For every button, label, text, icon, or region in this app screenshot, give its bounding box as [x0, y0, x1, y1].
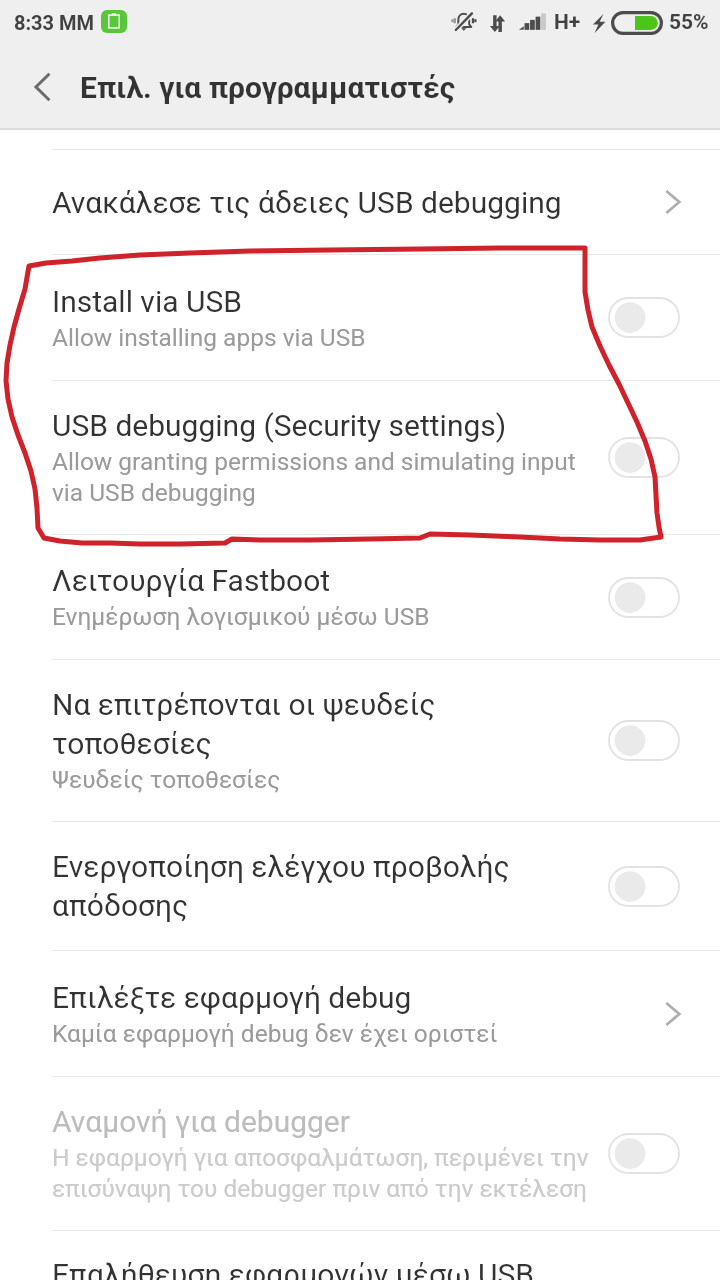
button[interactable]: Install via USB: [0, 255, 720, 380]
staticText: Install via USB: [52, 284, 242, 319]
button[interactable]: Toggle: [608, 437, 680, 478]
staticText: Ενημέρωση λογισμικού μέσω USB: [52, 602, 430, 631]
staticText: Αναμονή για debugger: [52, 1104, 350, 1139]
button[interactable]: Toggle: [608, 297, 680, 338]
button[interactable]: Επιλέξτε εφαρμογή debug: [0, 951, 720, 1076]
button[interactable]: Toggle: [608, 866, 680, 907]
button[interactable]: USB debugging (Security settings): [0, 381, 720, 534]
staticText: Επαλήθευση εφαρμογών μέσω USB: [52, 1257, 535, 1280]
button[interactable]: Ανακάλεσε τις άδειες USB debugging: [0, 150, 720, 254]
staticText: Να επιτρέπονται οι ψευδείς τοποθεσίες: [52, 687, 436, 761]
staticText: Καμία εφαρμογή debug δεν έχει οριστεί: [52, 1019, 498, 1048]
staticText: H+: [554, 10, 581, 35]
staticText: USB debugging (Security settings): [52, 408, 507, 443]
staticText: Η εφαρμογή για αποσφαλμάτωση, περιμένει …: [52, 1143, 589, 1203]
staticText: Ανακάλεσε τις άδειες USB debugging: [52, 185, 562, 220]
button[interactable]: Back: [20, 64, 66, 110]
button[interactable]: Αναμονή για debugger: [0, 1077, 720, 1230]
button[interactable]: Ενεργοποίηση ελέγχου προβολής απόδοσης: [0, 822, 720, 950]
button[interactable]: Να επιτρέπονται οι ψευδείς τοποθεσίες: [0, 660, 720, 821]
staticText: Λειτουργία Fastboot: [52, 563, 331, 598]
button[interactable]: Toggle: [608, 1133, 680, 1174]
staticText: 55%: [669, 10, 709, 35]
staticText: Επιλέξτε εφαρμογή debug: [52, 980, 412, 1015]
staticText: 8:33 ΜΜ: [14, 11, 95, 34]
staticText: Allow granting permissions and simulatin…: [52, 447, 576, 507]
button[interactable]: Λειτουργία Fastboot: [0, 535, 720, 659]
staticText: Ενεργοποίηση ελέγχου προβολής απόδοσης: [52, 849, 510, 923]
staticText: Ψευδείς τοποθεσίες: [52, 765, 281, 794]
button[interactable]: Επαλήθευση εφαρμογών μέσω USB: [0, 1231, 720, 1280]
button[interactable]: Toggle: [608, 720, 680, 761]
staticText: Allow installing apps via USB: [52, 323, 366, 352]
staticText: Επιλ. για προγραμματιστές: [80, 70, 456, 105]
button[interactable]: Toggle: [608, 577, 680, 618]
